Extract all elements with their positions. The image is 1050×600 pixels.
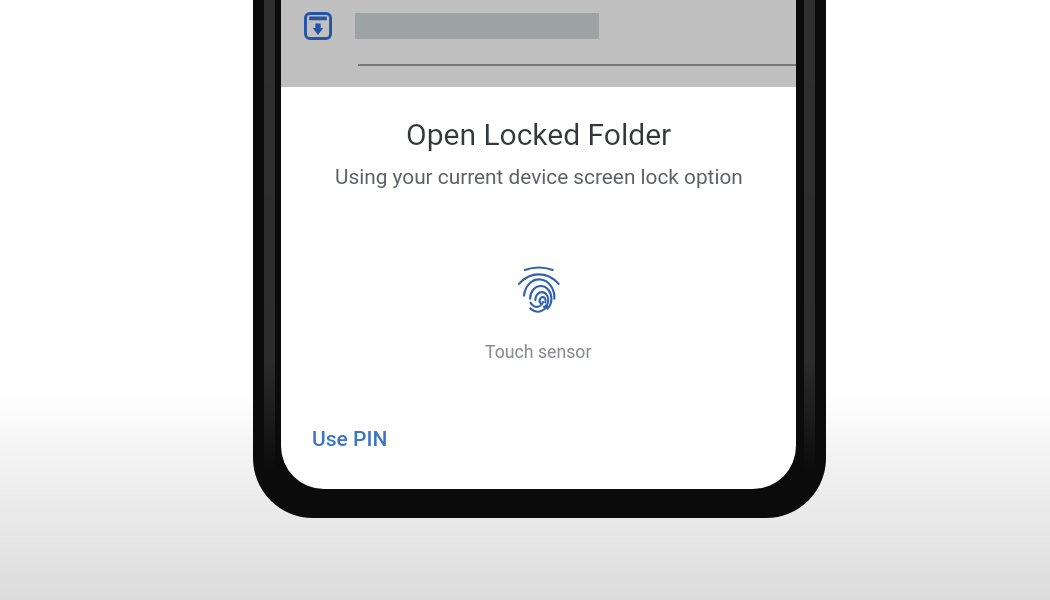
button[interactable]: Fingerprint sensor xyxy=(518,265,560,315)
staticText: Using your current device screen lock op… xyxy=(335,165,743,189)
staticText: Open Locked Folder xyxy=(406,117,672,152)
staticText: Use PIN xyxy=(312,427,388,452)
button[interactable]: Use PIN xyxy=(303,422,397,457)
staticText: Touch sensor xyxy=(485,342,592,363)
button[interactable]: Archive xyxy=(304,12,332,40)
